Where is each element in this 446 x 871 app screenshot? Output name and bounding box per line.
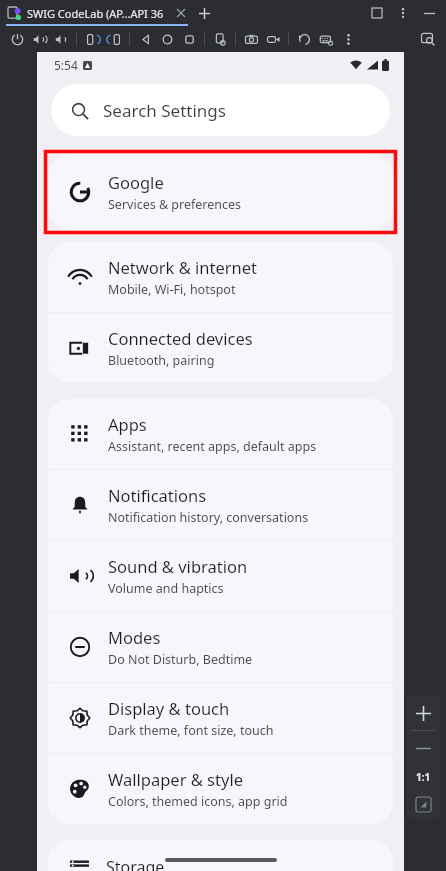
button[interactable]: Inspect: [418, 29, 438, 49]
staticText: Storage: [106, 856, 165, 871]
button[interactable]: Close tab: [174, 6, 188, 20]
staticText: Sound & vibration: [108, 555, 248, 577]
staticText: Connected devices: [108, 327, 253, 349]
button[interactable]: New tab: [196, 5, 212, 21]
button[interactable]: Fit to window: [406, 789, 440, 819]
button[interactable]: Search Settings: [51, 84, 390, 136]
staticText: Notifications: [108, 484, 207, 506]
staticText: Notification history, conversations: [108, 509, 309, 526]
button[interactable]: Minimize: [420, 4, 438, 22]
button[interactable]: Back: [134, 28, 156, 50]
staticText: Volume and haptics: [108, 580, 224, 597]
button[interactable]: Power: [6, 28, 28, 50]
staticText: 5:54: [54, 57, 78, 73]
button[interactable]: 1:1: [406, 765, 440, 789]
button[interactable]: Screenshot device: [209, 28, 231, 50]
staticText: Dark theme, font size, touch: [108, 722, 274, 739]
button[interactable]: Home: [156, 28, 178, 50]
staticText: Apps: [108, 413, 147, 435]
staticText: Services & preferences: [108, 196, 242, 213]
button[interactable]: Modes: [48, 612, 393, 682]
staticText: Display & touch: [108, 697, 230, 719]
button[interactable]: History: [293, 28, 315, 50]
button[interactable]: Sound & vibration: [48, 541, 393, 611]
button[interactable]: Apps: [48, 399, 393, 469]
button[interactable]: Google: [48, 154, 393, 230]
staticText: Bluetooth, pairing: [108, 352, 215, 369]
staticText: Assistant, recent apps, default apps: [108, 438, 317, 455]
button[interactable]: Overview: [178, 28, 200, 50]
button[interactable]: Rotate left: [81, 28, 103, 50]
button[interactable]: Restore window: [368, 4, 386, 22]
staticText: Do Not Disturb, Bedtime: [108, 651, 253, 668]
button[interactable]: Volume down: [50, 28, 72, 50]
staticText: Mobile, Wi-Fi, hotspot: [108, 281, 236, 298]
staticText: Google: [108, 171, 164, 193]
button[interactable]: Take screenshot: [240, 28, 262, 50]
button[interactable]: More options: [394, 4, 412, 22]
staticText: SWIG CodeLab (AP...API 36: [27, 6, 164, 21]
staticText: 1:1: [416, 770, 431, 784]
button[interactable]: Rotate right: [103, 28, 125, 50]
button[interactable]: Record screen: [262, 28, 284, 50]
button[interactable]: Wallpaper & style: [48, 754, 393, 824]
staticText: Network & internet: [108, 256, 258, 278]
staticText: Search Settings: [103, 99, 226, 122]
button[interactable]: Notifications: [48, 470, 393, 540]
button[interactable]: Network & internet: [48, 242, 393, 312]
staticText: Colors, themed icons, app grid: [108, 793, 288, 810]
button[interactable]: Zoom out: [406, 731, 440, 765]
button[interactable]: Display & touch: [48, 683, 393, 753]
button[interactable]: Zoom in: [406, 696, 440, 730]
button[interactable]: Keyboard: [315, 28, 337, 50]
button[interactable]: Storage: [48, 840, 393, 871]
button[interactable]: Volume up: [28, 28, 50, 50]
staticText: Modes: [108, 626, 161, 648]
button[interactable]: Connected devices: [48, 313, 393, 383]
button[interactable]: More: [337, 28, 359, 50]
staticText: Wallpaper & style: [108, 768, 243, 790]
